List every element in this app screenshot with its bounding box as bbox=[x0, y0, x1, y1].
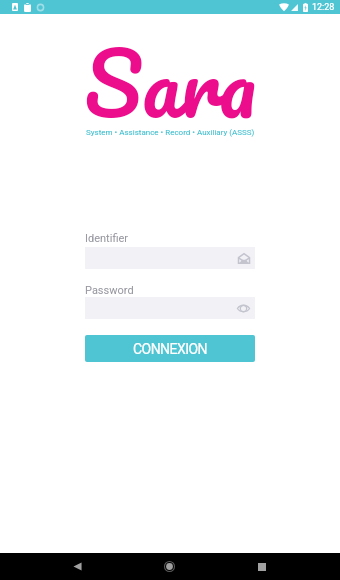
other: Email bbox=[238, 253, 250, 264]
staticText: Sara bbox=[84, 10, 257, 156]
button[interactable]: Home bbox=[151, 553, 188, 580]
button[interactable]: CONNEXION bbox=[85, 335, 255, 362]
staticText: CONNEXION bbox=[133, 341, 207, 357]
staticText: System • Assistance • Record • Auxiliary… bbox=[86, 128, 255, 137]
button[interactable]: Recent apps bbox=[243, 553, 280, 580]
other: Show password bbox=[237, 304, 250, 313]
button[interactable]: Back bbox=[59, 553, 96, 580]
staticText: Identifier bbox=[85, 232, 129, 245]
staticText: 12:28 bbox=[312, 2, 335, 13]
button[interactable]: Show password bbox=[85, 297, 255, 319]
button[interactable]: Email bbox=[85, 247, 255, 269]
staticText: Password bbox=[85, 284, 134, 297]
